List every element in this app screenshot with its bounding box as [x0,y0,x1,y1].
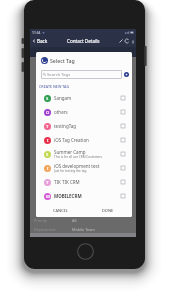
button[interactable]: Refresh [124,38,130,44]
staticText: S [46,152,49,158]
staticText: S [46,96,49,102]
staticText: DONE [102,208,114,213]
staticText: This is for all our CRM Customers [54,155,103,159]
staticText: I [47,166,49,172]
staticText: CANCEL [53,208,68,213]
button[interactable]: T [36,119,132,133]
staticText: Priority [34,218,47,223]
button[interactable]: I [36,161,132,175]
button[interactable]: Add tag [124,72,129,77]
button[interactable]: CANCEL [36,205,84,216]
button[interactable]: O [36,105,132,119]
button[interactable]: S [36,91,132,105]
button[interactable]: DONE [84,205,132,216]
staticText: I [47,138,49,144]
staticText: TIK TIK CRM [54,179,80,185]
staticText: Mobile Team [72,227,95,232]
staticText: Contact Details [67,38,100,44]
staticText: M [46,194,50,200]
staticText: CREATE NEW TAG [39,84,70,89]
button[interactable]: S [36,147,132,161]
staticText: All [72,218,77,223]
button[interactable]: T [36,175,132,189]
staticText: Select Tag [50,57,75,64]
staticText: Search Tags [47,72,71,78]
staticText: MOBILECRM [54,193,82,199]
staticText: O [46,110,50,116]
button[interactable]: I [36,133,132,147]
staticText: Summer Camp [54,149,86,155]
button[interactable]: Edit [118,38,124,44]
staticText: Just for testing the tag [54,169,87,173]
staticText: T [46,180,49,186]
staticText: iOS Tag Creation [54,137,89,143]
staticText: others [54,109,68,115]
button[interactable]: More options [130,39,135,44]
staticText: Department [34,227,56,232]
staticText: Sangam [54,95,72,101]
staticText: testingTag [54,123,77,129]
staticText: 11:54 [32,30,41,34]
staticText: iOS development test [54,163,100,169]
button[interactable]: M [36,189,132,203]
button[interactable]: Back [30,36,50,46]
staticText: Back [37,38,48,44]
button[interactable]: Search Tags [43,70,120,79]
staticText: T [46,124,49,130]
